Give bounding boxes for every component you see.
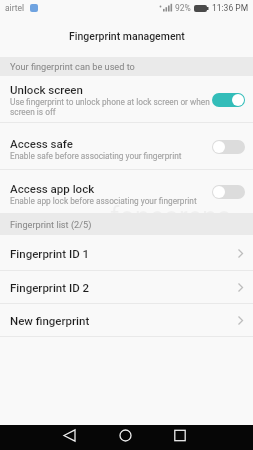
staticText: 92% [175, 3, 191, 13]
staticText: Unlock screen [10, 83, 83, 96]
staticText: New fingerprint [10, 314, 90, 327]
button[interactable]: Access app lock [0, 170, 253, 213]
staticText: fonearena [110, 201, 232, 233]
staticText: Fingerprint ID 2 [10, 281, 90, 294]
button[interactable]: Access safe [0, 123, 253, 170]
staticText: Fingerprint ID 1 [10, 247, 90, 260]
button[interactable] [212, 185, 245, 199]
button[interactable] [212, 140, 245, 154]
staticText: 11:36 PM [212, 3, 249, 13]
button[interactable]: New fingerprint [0, 304, 253, 337]
staticText: Enable app lock before associating your … [10, 196, 197, 206]
staticText: Use fingerprint to unlock phone at lock … [10, 97, 201, 117]
button[interactable] [169, 425, 253, 450]
button[interactable] [85, 425, 169, 450]
staticText: airtel [5, 3, 25, 13]
button[interactable] [212, 93, 245, 107]
button[interactable]: Unlock screen [0, 76, 253, 123]
button[interactable]: Fingerprint ID 2 [0, 271, 253, 304]
button[interactable] [0, 425, 85, 450]
staticText: Access safe [10, 137, 73, 150]
staticText: Your fingerprint can be used to [10, 61, 135, 72]
staticText: Enable safe before associating your fing… [10, 151, 182, 161]
staticText: Fingerprint list (2/5) [10, 219, 92, 230]
staticText: Fingerprint management [69, 30, 185, 42]
staticText: Access app lock [10, 182, 95, 195]
button[interactable]: Fingerprint ID 1 [0, 235, 253, 271]
